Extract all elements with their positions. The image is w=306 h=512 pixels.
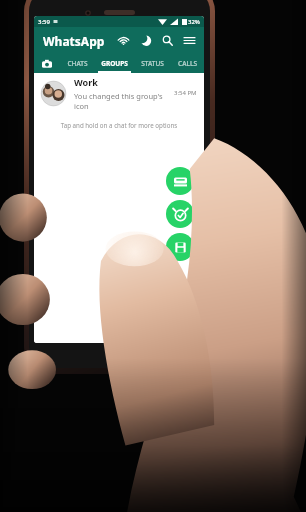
staticText: GROUPS — [101, 59, 128, 68]
staticText: CHATS — [67, 59, 88, 68]
staticText: Work — [74, 76, 98, 88]
button[interactable]: Work — [34, 73, 204, 113]
button[interactable]: Status — [116, 33, 131, 48]
staticText: 3:54 PM — [174, 89, 197, 97]
staticText: You changed this group's icon — [74, 91, 174, 111]
staticText: CALLS — [178, 59, 197, 68]
staticText: 3:59 — [38, 18, 50, 26]
button[interactable]: More options — [182, 33, 197, 48]
button[interactable]: Reminder — [166, 200, 194, 228]
button[interactable]: Camera — [34, 54, 59, 73]
staticText: 32% — [188, 18, 200, 26]
button[interactable]: CALLS — [170, 54, 204, 73]
staticText: Tap and hold on a chat for more options — [34, 121, 204, 129]
button[interactable]: Search — [160, 33, 175, 48]
button[interactable]: GROUPS — [95, 54, 134, 73]
button[interactable]: STATUS — [134, 54, 170, 73]
staticText: WhatsApp — [43, 33, 105, 49]
button[interactable]: CHATS — [59, 54, 95, 73]
button[interactable]: New broadcast — [166, 167, 194, 195]
button[interactable]: New chat — [166, 233, 194, 261]
staticText: STATUS — [141, 59, 164, 68]
button[interactable]: Night mode — [138, 33, 153, 48]
